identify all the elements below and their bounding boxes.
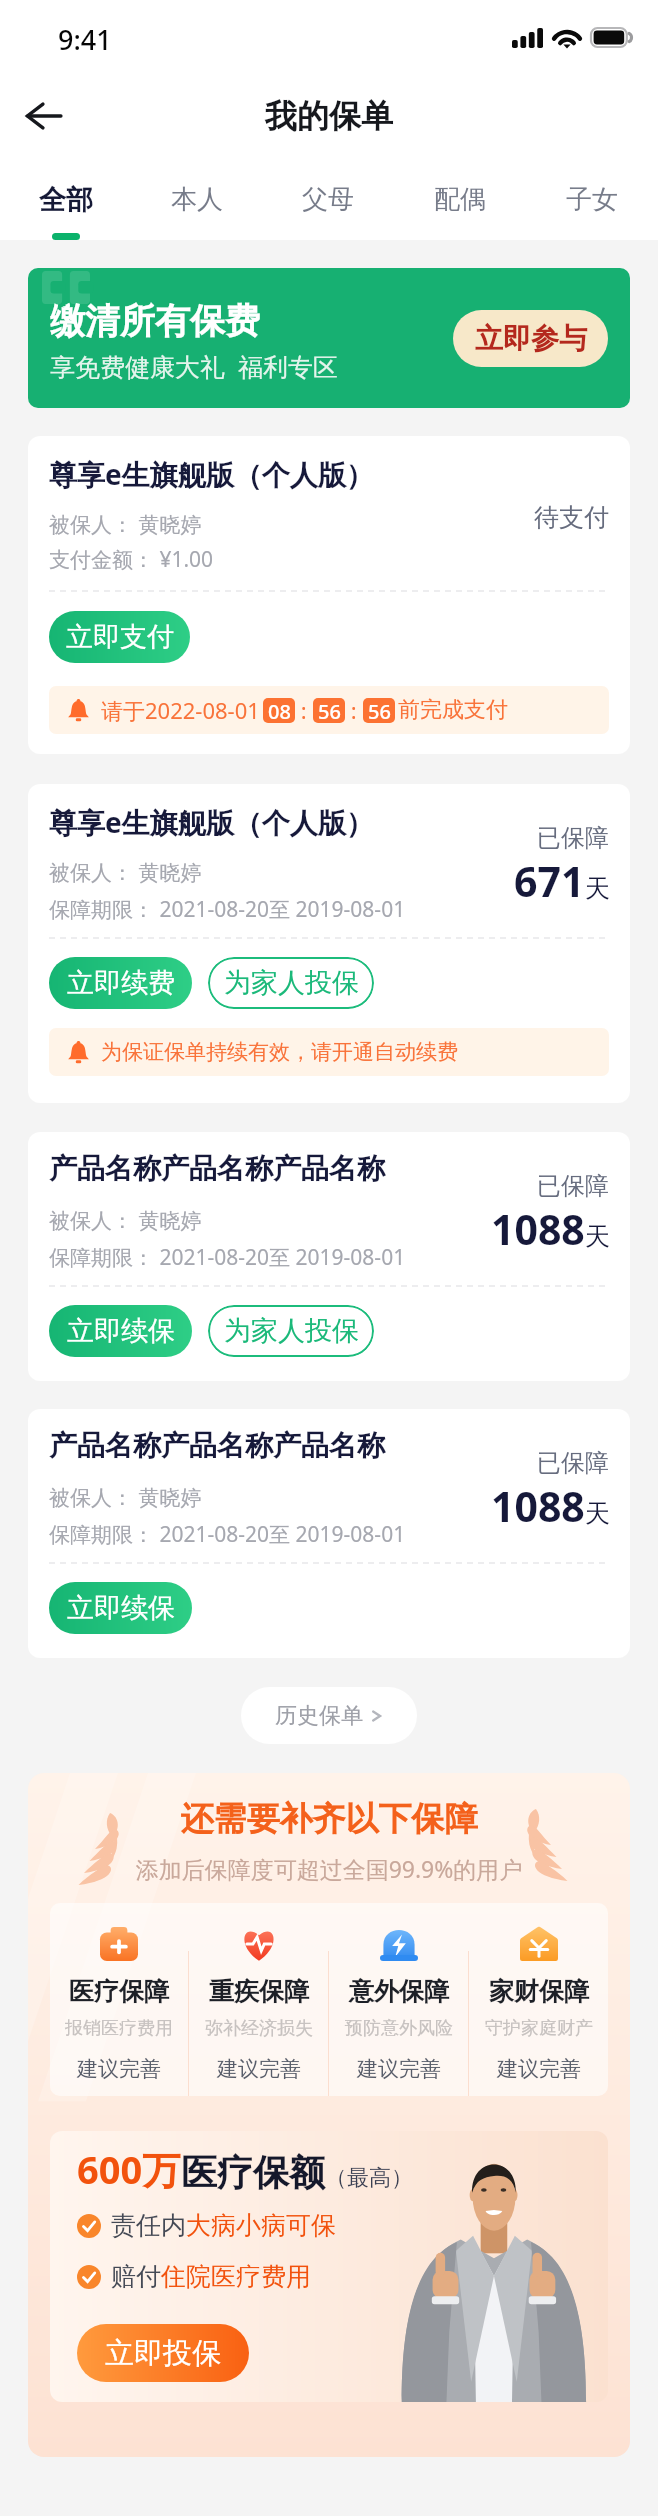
staticText: 08 (268, 698, 291, 723)
staticText: 保障期限： 2021-08-20至 2019-08-01 (49, 1520, 406, 1549)
staticText: 天 (585, 873, 610, 904)
staticText: 医疗保障 (69, 1976, 169, 2007)
staticText: 预防意外风险 (345, 2017, 453, 2040)
staticText: 被保人： 黄晓婷 (49, 1483, 202, 1512)
staticText: 子女 (566, 183, 618, 216)
button[interactable]: Back (16, 88, 72, 144)
button[interactable]: 立即支付 (49, 611, 190, 663)
button[interactable]: 立即投保 (77, 2324, 249, 2382)
staticText: 建议完善 (357, 2056, 441, 2082)
staticText: 已保障 (537, 823, 609, 853)
button[interactable]: 全部 (0, 155, 131, 240)
staticText: 为家人投保 (224, 966, 359, 1000)
staticText: （最高） (325, 2164, 413, 2192)
staticText: 建议完善 (217, 2056, 301, 2082)
staticText: 请于2022-08-01 (101, 695, 260, 725)
staticText: 尊享e生旗舰版（个人版） (49, 803, 374, 841)
staticText: 历史保单 (275, 1702, 363, 1730)
button[interactable]: 立即续费 (49, 957, 192, 1009)
staticText: 被保人： 黄晓婷 (49, 858, 202, 887)
staticText: 产品名称产品名称产品名称 (49, 1428, 385, 1463)
staticText: 报销医疗费用 (65, 2017, 173, 2040)
button[interactable]: 本人 (131, 155, 262, 240)
staticText: 建议完善 (77, 2056, 161, 2082)
staticText: 立即投保 (105, 2335, 221, 2372)
staticText: 父母 (302, 183, 354, 216)
staticText: 1088 (491, 1201, 585, 1257)
staticText: 前完成支付 (398, 696, 508, 724)
staticText: 缴清所有保费 (50, 299, 260, 343)
staticText: 立即参与 (475, 321, 587, 356)
staticText: 立即续费 (67, 966, 175, 1000)
staticText: 还需要补齐以下保障 (28, 1798, 630, 1840)
staticText: 待支付 (534, 502, 609, 533)
staticText: 守护家庭财产 (485, 2017, 593, 2040)
staticText: 产品名称产品名称产品名称 (49, 1151, 385, 1186)
staticText: 为家人投保 (224, 1314, 359, 1348)
button[interactable]: 重疾保障 (189, 1927, 328, 2082)
staticText: 天 (585, 1221, 610, 1252)
staticText: 责任内 (111, 2210, 186, 2241)
button[interactable]: 产品名称产品名称产品名称 (28, 1132, 630, 1381)
staticText: 我的保单 (265, 96, 393, 136)
staticText: : (295, 695, 313, 725)
staticText: 1088 (491, 1478, 585, 1534)
staticText: 家财保障 (489, 1976, 589, 2007)
staticText: 添加后保障度可超过全国99.9%的用户 (28, 1853, 630, 1884)
staticText: 本人 (171, 183, 223, 216)
staticText: 56 (318, 698, 341, 723)
staticText: 享免费健康大礼 福利专区 (50, 349, 339, 383)
button[interactable]: 产品名称产品名称产品名称 (28, 1409, 630, 1658)
staticText: : (345, 695, 363, 725)
button[interactable]: 父母 (262, 155, 394, 240)
staticText: 天 (585, 1498, 610, 1529)
staticText: 已保障 (537, 1448, 609, 1478)
staticText: 支付金额： ¥1.00 (49, 545, 214, 574)
staticText: 建议完善 (497, 2056, 581, 2082)
button[interactable]: 配偶 (394, 155, 526, 240)
staticText: 立即支付 (66, 620, 174, 654)
staticText: 被保人： 黄晓婷 (49, 1206, 202, 1235)
button[interactable]: 立即续保 (49, 1305, 192, 1357)
button[interactable]: 家财保障 (469, 1927, 608, 2082)
button[interactable]: 缴清所有保费 (28, 268, 630, 408)
staticText: 大病小病可保 (186, 2210, 336, 2241)
button[interactable]: 尊享e生旗舰版（个人版） (28, 784, 630, 1103)
staticText: 住院医疗费用 (161, 2261, 311, 2292)
staticText: 配偶 (434, 183, 486, 216)
staticText: 9:41 (58, 21, 112, 58)
staticText: 医疗保额 (181, 2150, 325, 2195)
staticText: 保障期限： 2021-08-20至 2019-08-01 (49, 895, 406, 924)
button[interactable]: 为家人投保 (208, 957, 374, 1009)
staticText: 弥补经济损失 (205, 2017, 313, 2040)
button[interactable]: 尊享e生旗舰版（个人版） (28, 436, 630, 754)
staticText: 立即续保 (67, 1591, 175, 1625)
staticText: 尊享e生旗舰版（个人版） (49, 455, 374, 493)
staticText: 为保证保单持续有效，请开通自动续费 (101, 1039, 458, 1065)
staticText: 立即续保 (67, 1314, 175, 1348)
staticText: 保障期限： 2021-08-20至 2019-08-01 (49, 1243, 406, 1272)
button[interactable]: 立即续保 (49, 1582, 192, 1634)
staticText: 671 (514, 853, 585, 909)
staticText: 意外保障 (349, 1976, 449, 2007)
staticText: 全部 (39, 183, 93, 217)
button[interactable]: 医疗保障 (50, 1927, 188, 2082)
staticText: 600万 (77, 2143, 181, 2195)
staticText: 被保人： 黄晓婷 (49, 510, 202, 539)
staticText: 已保障 (537, 1171, 609, 1201)
staticText: 赔付 (111, 2261, 161, 2292)
button[interactable]: 为家人投保 (208, 1305, 374, 1357)
staticText: 重疾保障 (209, 1976, 309, 2007)
button[interactable]: 历史保单 (241, 1687, 417, 1744)
button[interactable]: 立即参与 (453, 310, 608, 367)
button[interactable]: 子女 (526, 155, 658, 240)
button[interactable]: 意外保障 (329, 1927, 468, 2082)
staticText: 56 (368, 698, 391, 723)
